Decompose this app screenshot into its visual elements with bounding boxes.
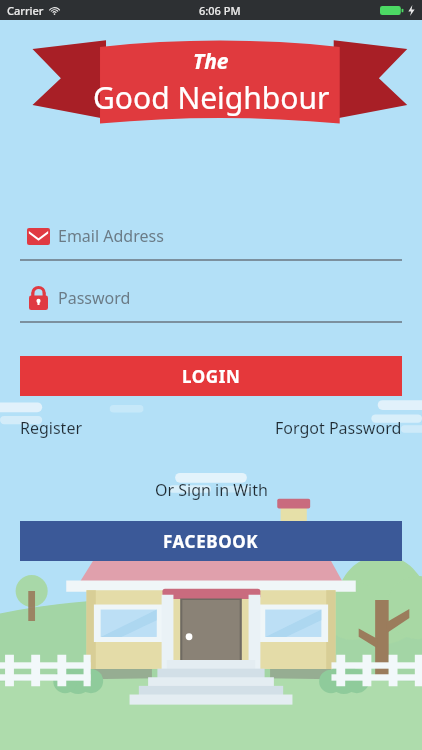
other: Password [20, 286, 56, 310]
staticText: The [193, 47, 229, 76]
other: Email [20, 228, 56, 245]
staticText: Carrier [7, 3, 44, 18]
button[interactable]: LOGIN [20, 356, 402, 396]
staticText: Forgot Password [275, 417, 402, 439]
staticText: Register [20, 417, 83, 439]
staticText: 6:06 PM [199, 3, 241, 18]
staticText: LOGIN [182, 365, 241, 388]
button[interactable]: Forgot Password [275, 413, 402, 443]
staticText: FACEBOOK [163, 530, 259, 553]
staticText: Good Neighbour [93, 77, 330, 118]
button[interactable]: Email [20, 221, 402, 251]
staticText: Email Address [58, 225, 164, 247]
staticText: Or Sign in With [155, 479, 268, 501]
button[interactable]: Register [20, 413, 83, 443]
button[interactable]: FACEBOOK [20, 521, 402, 561]
button[interactable]: Password [20, 283, 402, 313]
staticText: Password [58, 287, 131, 309]
